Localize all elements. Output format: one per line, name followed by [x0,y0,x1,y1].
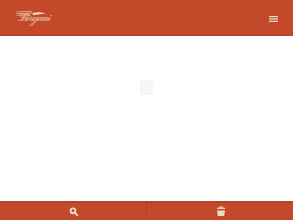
button[interactable]: Menu [261,9,285,28]
button[interactable]: Search [0,201,146,220]
staticText: Biryani [18,12,51,26]
button[interactable]: Cart [147,201,293,220]
button[interactable]: Biryani home [14,9,53,24]
